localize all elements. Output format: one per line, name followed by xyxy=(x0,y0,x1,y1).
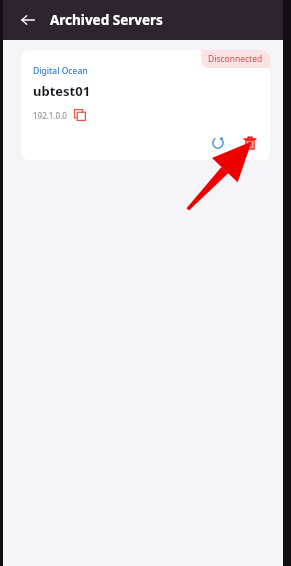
button[interactable]: Back xyxy=(13,5,43,35)
button[interactable]: Delete xyxy=(239,132,261,154)
staticText: Archived Servers xyxy=(50,11,163,29)
staticText: ubtest01 xyxy=(33,82,91,100)
staticText: 192.1.0.0 xyxy=(33,110,67,121)
button[interactable]: Refresh xyxy=(207,132,229,154)
button[interactable]: Disconnected xyxy=(201,50,270,68)
button[interactable]: Disconnected xyxy=(21,50,270,160)
button[interactable]: Copy IP address xyxy=(73,108,87,122)
staticText: Digital Ocean xyxy=(33,65,88,77)
staticText: Disconnected xyxy=(208,53,263,65)
